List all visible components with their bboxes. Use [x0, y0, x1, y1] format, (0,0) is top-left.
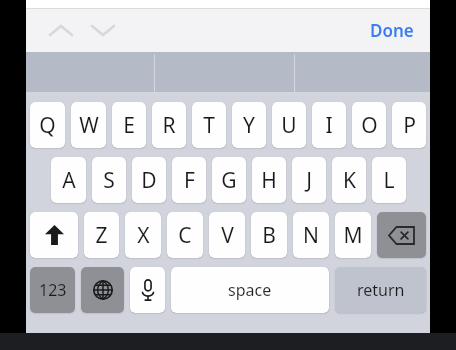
button[interactable]: Previous field [40, 8, 82, 52]
staticText: T [203, 111, 215, 140]
staticText: M [343, 221, 363, 250]
button[interactable]: H [252, 157, 286, 203]
staticText: Z [95, 221, 108, 250]
button[interactable]: X [125, 212, 161, 258]
button[interactable]: W [71, 102, 106, 148]
button[interactable]: E [112, 102, 146, 148]
staticText: I [325, 111, 333, 140]
staticText: B [262, 221, 276, 250]
button[interactable]: K [332, 157, 366, 203]
staticText: V [221, 221, 234, 250]
button[interactable]: O [352, 102, 386, 148]
staticText: F [184, 166, 195, 195]
button[interactable]: return [335, 267, 426, 313]
staticText: H [261, 166, 277, 195]
staticText: return [357, 279, 405, 301]
staticText: A [62, 166, 76, 195]
button[interactable]: L [372, 157, 406, 203]
staticText: 123 [39, 279, 67, 301]
button[interactable]: F [172, 157, 206, 203]
button[interactable]: Backspace [377, 212, 426, 258]
button[interactable]: Next field [82, 8, 124, 52]
staticText: E [123, 111, 135, 140]
button[interactable]: 123 [30, 267, 75, 313]
button[interactable]: A [51, 157, 86, 203]
button[interactable]: U [272, 102, 306, 148]
button[interactable]: Next keyboard [81, 267, 124, 313]
staticText: O [361, 111, 378, 140]
staticText: P [403, 111, 416, 140]
staticText: N [303, 221, 319, 250]
button[interactable]: Z [84, 212, 119, 258]
button[interactable]: P [392, 102, 426, 148]
staticText: C [178, 221, 192, 250]
staticText: D [141, 166, 157, 195]
button[interactable]: V [209, 212, 245, 258]
staticText: Q [39, 111, 56, 140]
staticText: space [228, 279, 272, 301]
button[interactable]: B [251, 212, 287, 258]
button[interactable]: R [152, 102, 186, 148]
staticText: W [79, 111, 99, 140]
staticText: R [162, 111, 176, 140]
button[interactable]: Dictation [130, 267, 165, 313]
button[interactable]: Y [232, 102, 266, 148]
staticText: X [137, 221, 150, 250]
staticText: S [103, 166, 115, 195]
staticText: Done [370, 19, 414, 42]
staticText: J [306, 166, 312, 195]
button[interactable]: Shift [30, 212, 78, 258]
button[interactable]: C [167, 212, 203, 258]
staticText: U [281, 111, 297, 140]
button[interactable]: space [171, 267, 329, 313]
staticText: Y [243, 111, 255, 140]
button[interactable]: I [312, 102, 346, 148]
button[interactable] [26, 52, 154, 95]
button[interactable] [155, 52, 294, 95]
staticText: G [221, 166, 237, 195]
button[interactable]: Q [30, 102, 65, 148]
button[interactable]: T [192, 102, 226, 148]
staticText: K [343, 166, 356, 195]
button[interactable]: D [132, 157, 166, 203]
button[interactable]: J [292, 157, 326, 203]
button[interactable]: M [335, 212, 371, 258]
staticText: L [383, 166, 395, 195]
button[interactable]: S [92, 157, 126, 203]
button[interactable] [295, 52, 430, 95]
button[interactable]: G [212, 157, 246, 203]
button[interactable]: N [293, 212, 329, 258]
button[interactable]: Done [354, 8, 430, 52]
